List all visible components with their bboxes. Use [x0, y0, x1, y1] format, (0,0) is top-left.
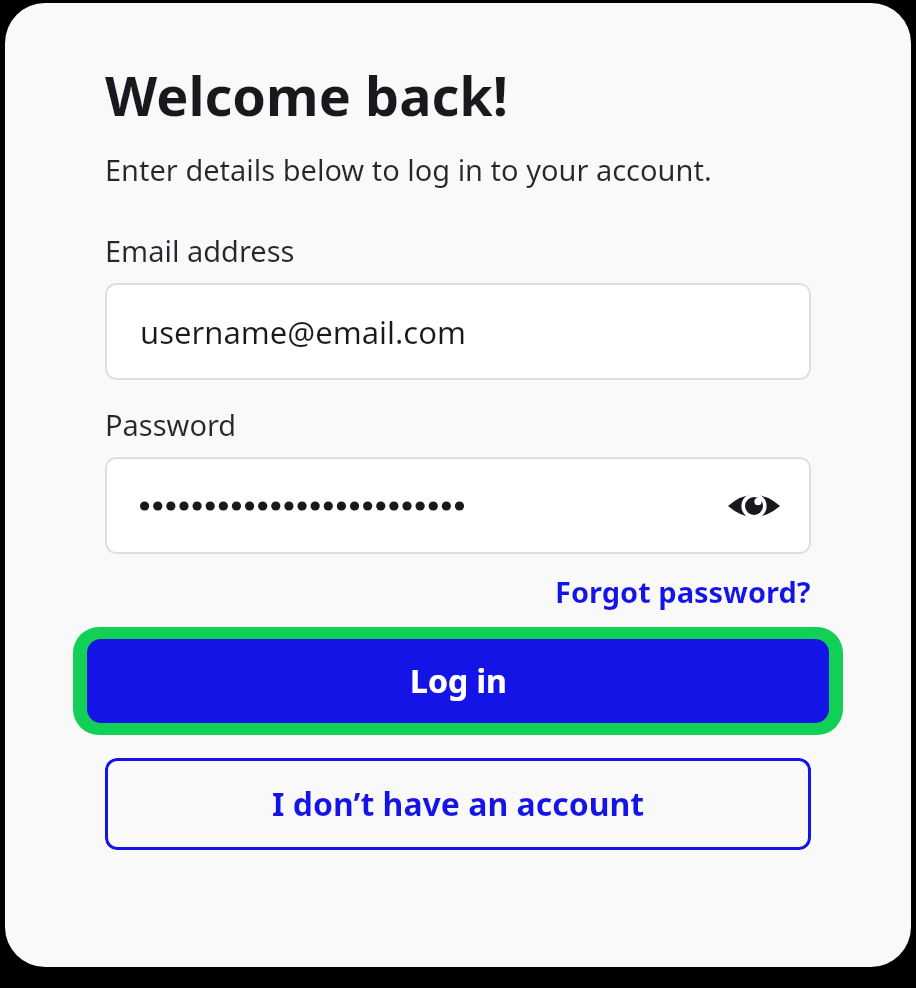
- button[interactable]: Show password: [105, 457, 811, 554]
- staticText: Log in: [410, 659, 507, 703]
- button[interactable]: username@email.com: [105, 283, 811, 380]
- button[interactable]: Log in: [73, 627, 843, 735]
- button[interactable]: Show password: [725, 477, 783, 535]
- staticText: Enter details below to log in to your ac…: [105, 150, 712, 189]
- staticText: username@email.com: [140, 311, 466, 353]
- staticText: I don’t have an account: [272, 782, 645, 826]
- button[interactable]: I don’t have an account: [105, 758, 811, 850]
- staticText: Forgot password?: [555, 572, 811, 611]
- button[interactable]: Forgot password?: [555, 568, 811, 615]
- staticText: Welcome back!: [105, 58, 509, 132]
- staticText: Email address: [105, 231, 295, 270]
- staticText: Password: [105, 405, 237, 444]
